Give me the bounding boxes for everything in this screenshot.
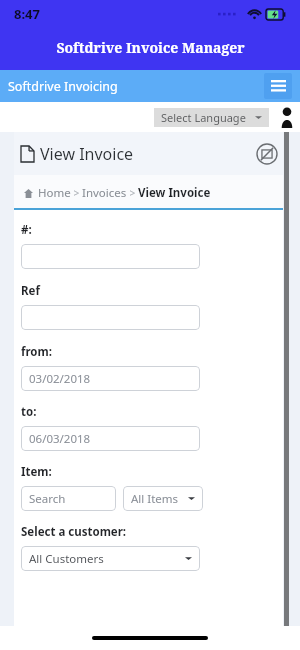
staticText: #:: [21, 222, 32, 238]
staticText: from:: [21, 344, 52, 360]
button[interactable]: [21, 305, 200, 330]
staticText: Softdrive Invoicing: [8, 78, 118, 95]
button[interactable]: [21, 244, 200, 269]
button[interactable]: All Customers: [21, 546, 200, 571]
staticText: to:: [21, 404, 37, 420]
staticText: All Customers: [29, 551, 104, 567]
staticText: Ref: [21, 283, 40, 299]
staticText: Search: [29, 491, 66, 507]
button[interactable]: 06/03/2018: [21, 426, 200, 451]
button[interactable]: Invoices: [82, 185, 127, 201]
staticText: View Invoice: [138, 185, 211, 201]
staticText: Softdrive Invoice Manager: [56, 38, 245, 57]
button[interactable]: Account: [279, 106, 295, 128]
button[interactable]: Home: [38, 185, 71, 201]
staticText: View Invoice: [40, 143, 134, 165]
button[interactable]: Select Language: [154, 108, 269, 127]
button[interactable]: Search: [21, 486, 116, 511]
staticText: Select a customer:: [21, 524, 127, 540]
button[interactable]: All Items: [123, 486, 203, 511]
button[interactable]: Open menu: [264, 73, 292, 99]
staticText: 8:47: [14, 5, 40, 23]
staticText: 03/02/2018: [29, 371, 91, 387]
staticText: >: [127, 186, 138, 200]
button[interactable]: 03/02/2018: [21, 366, 200, 391]
staticText: Select Language: [161, 110, 246, 125]
staticText: All Items: [131, 491, 179, 507]
staticText: Item:: [21, 464, 52, 480]
staticText: >: [71, 186, 82, 200]
staticText: 06/03/2018: [29, 431, 91, 447]
button[interactable]: Image unavailable: [256, 143, 278, 165]
